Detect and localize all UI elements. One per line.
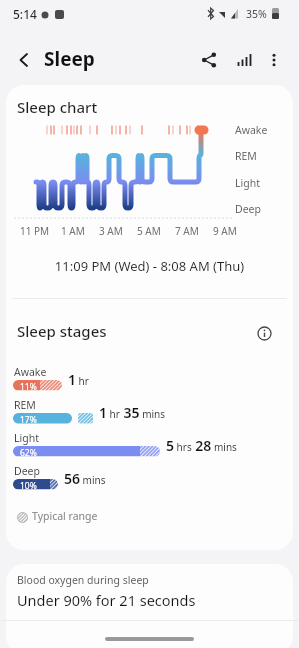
- staticText: 9 AM: [213, 224, 237, 238]
- staticText: REM: [235, 149, 257, 163]
- staticText: 56 mins: [64, 469, 106, 488]
- staticText: Light: [14, 431, 39, 445]
- staticText: Awake: [235, 123, 268, 137]
- staticText: 1 hr: [68, 370, 89, 389]
- staticText: REM: [14, 398, 36, 412]
- staticText: 5:14: [13, 6, 37, 22]
- staticText: 5 AM: [137, 224, 161, 238]
- staticText: 3 AM: [99, 224, 123, 238]
- staticText: Under 90% for 21 seconds: [17, 590, 196, 610]
- staticText: Light: [235, 176, 260, 190]
- staticText: Deep: [235, 202, 261, 216]
- staticText: 11:09 PM (Wed) - 8:08 AM (Thu): [6, 257, 293, 275]
- staticText: Sleep chart: [17, 97, 98, 117]
- button[interactable]: [229, 45, 259, 75]
- staticText: 7 AM: [175, 224, 199, 238]
- staticText: Blood oxygen during sleep: [17, 573, 149, 587]
- staticText: 11%: [20, 381, 37, 393]
- button[interactable]: [259, 45, 289, 75]
- staticText: 10%: [20, 480, 37, 492]
- button[interactable]: [8, 44, 40, 76]
- staticText: 62%: [20, 447, 37, 459]
- staticText: Sleep stages: [17, 321, 107, 341]
- staticText: 35%: [246, 7, 267, 21]
- staticText: 5 hrs 28 mins: [166, 436, 237, 455]
- staticText: Awake: [14, 365, 47, 379]
- staticText: 1 AM: [61, 224, 85, 238]
- staticText: 1 hr 35 mins: [99, 403, 166, 422]
- staticText: Deep: [14, 464, 40, 478]
- staticText: 17%: [20, 414, 37, 426]
- staticText: Sleep: [44, 46, 95, 72]
- staticText: Typical range: [32, 509, 98, 523]
- button[interactable]: Blood oxygen during sleep: [6, 564, 293, 648]
- button[interactable]: [194, 45, 224, 75]
- staticText: 11 PM: [20, 224, 50, 238]
- button[interactable]: [255, 324, 273, 342]
